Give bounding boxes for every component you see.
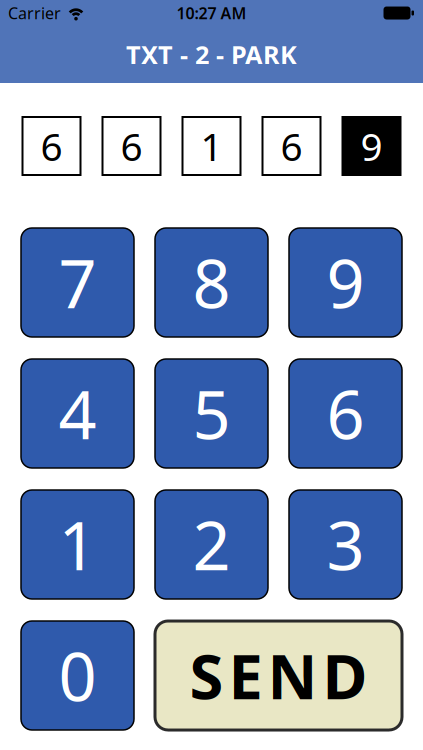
staticText: 8: [192, 238, 230, 327]
staticText: 2: [192, 500, 230, 589]
staticText: 6: [120, 120, 142, 172]
button[interactable]: 1: [21, 490, 134, 599]
button[interactable]: 7: [21, 228, 134, 337]
button[interactable]: 0: [21, 621, 134, 730]
staticText: 7: [58, 238, 96, 327]
staticText: 10:27 AM: [176, 2, 246, 24]
staticText: 9: [360, 120, 382, 172]
staticText: 6: [326, 369, 364, 458]
staticText: 4: [58, 369, 96, 458]
staticText: 6: [40, 120, 62, 172]
staticText: 1: [58, 500, 96, 589]
button[interactable]: 8: [155, 228, 268, 337]
button[interactable]: 6: [289, 359, 402, 468]
button[interactable]: 4: [21, 359, 134, 468]
staticText: 0: [58, 631, 96, 720]
staticText: Carrier: [8, 2, 61, 24]
staticText: 9: [326, 238, 364, 327]
button[interactable]: SEND: [155, 621, 402, 730]
staticText: 5: [192, 369, 230, 458]
staticText: 3: [326, 500, 364, 589]
button[interactable]: 3: [289, 490, 402, 599]
staticText: 6: [280, 120, 302, 172]
button[interactable]: 2: [155, 490, 268, 599]
button[interactable]: 5: [155, 359, 268, 468]
staticText: SEND: [189, 635, 367, 716]
staticText: TXT - 2 - PARK: [126, 38, 297, 71]
button[interactable]: 9: [289, 228, 402, 337]
staticText: 1: [200, 120, 222, 172]
